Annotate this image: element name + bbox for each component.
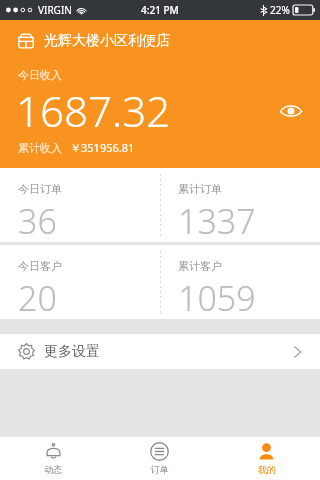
staticText: 今日订单 (18, 182, 62, 196)
staticText: 累计收入 (18, 141, 62, 155)
button[interactable]: 更多设置 (0, 334, 320, 369)
staticText: 4:21 PM (141, 3, 179, 17)
staticText: 1337 (178, 198, 256, 242)
button[interactable]: 订单 (106, 437, 213, 480)
staticText: 订单 (151, 464, 169, 475)
staticText: 22% (270, 3, 290, 17)
button[interactable]: 今日订单 (0, 168, 160, 242)
button[interactable]: 今日客户 (0, 245, 160, 319)
staticText: 光辉大楼小区利便店 (44, 32, 170, 50)
button[interactable]: 我的 (213, 437, 320, 480)
staticText: 1687.32 (16, 82, 171, 139)
staticText: 累计客户 (178, 259, 222, 273)
staticText: 累计订单 (178, 182, 222, 196)
button[interactable]: 累计客户 (160, 245, 320, 319)
staticText: 1059 (178, 275, 256, 319)
button[interactable]: 光辉大楼小区利便店 (17, 32, 170, 50)
staticText: 今日客户 (18, 259, 62, 273)
staticText: VIRGIN (38, 3, 72, 17)
staticText: 20 (18, 275, 57, 319)
staticText: ￥351956.81 (70, 140, 135, 155)
staticText: 更多设置 (44, 343, 100, 361)
staticText: 动态 (44, 464, 62, 475)
staticText: 36 (18, 198, 57, 242)
staticText: 今日收入 (18, 68, 62, 82)
button[interactable]: 累计订单 (160, 168, 320, 242)
button[interactable]: 动态 (0, 437, 106, 480)
button[interactable]: Toggle income visibility (276, 96, 306, 126)
staticText: 我的 (258, 464, 276, 475)
